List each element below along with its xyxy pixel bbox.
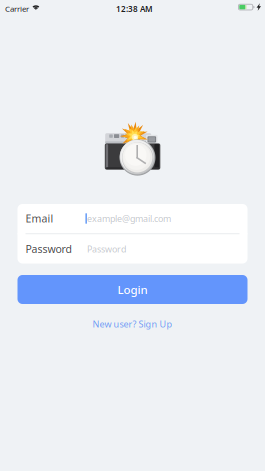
staticText: Carrier: [5, 3, 29, 14]
staticText: 12:38 AM: [116, 3, 153, 14]
staticText: Email: [25, 211, 53, 226]
staticText: New user? Sign Up: [92, 318, 172, 330]
staticText: example@gmail.com: [87, 212, 171, 225]
staticText: Password: [25, 242, 71, 256]
button[interactable]: Email: [17, 204, 247, 233]
staticText: Password: [87, 243, 126, 255]
button[interactable]: New user? Sign Up: [82, 317, 182, 331]
button[interactable]: Password: [17, 234, 247, 264]
staticText: Login: [117, 282, 147, 297]
button[interactable]: Login: [17, 275, 247, 304]
